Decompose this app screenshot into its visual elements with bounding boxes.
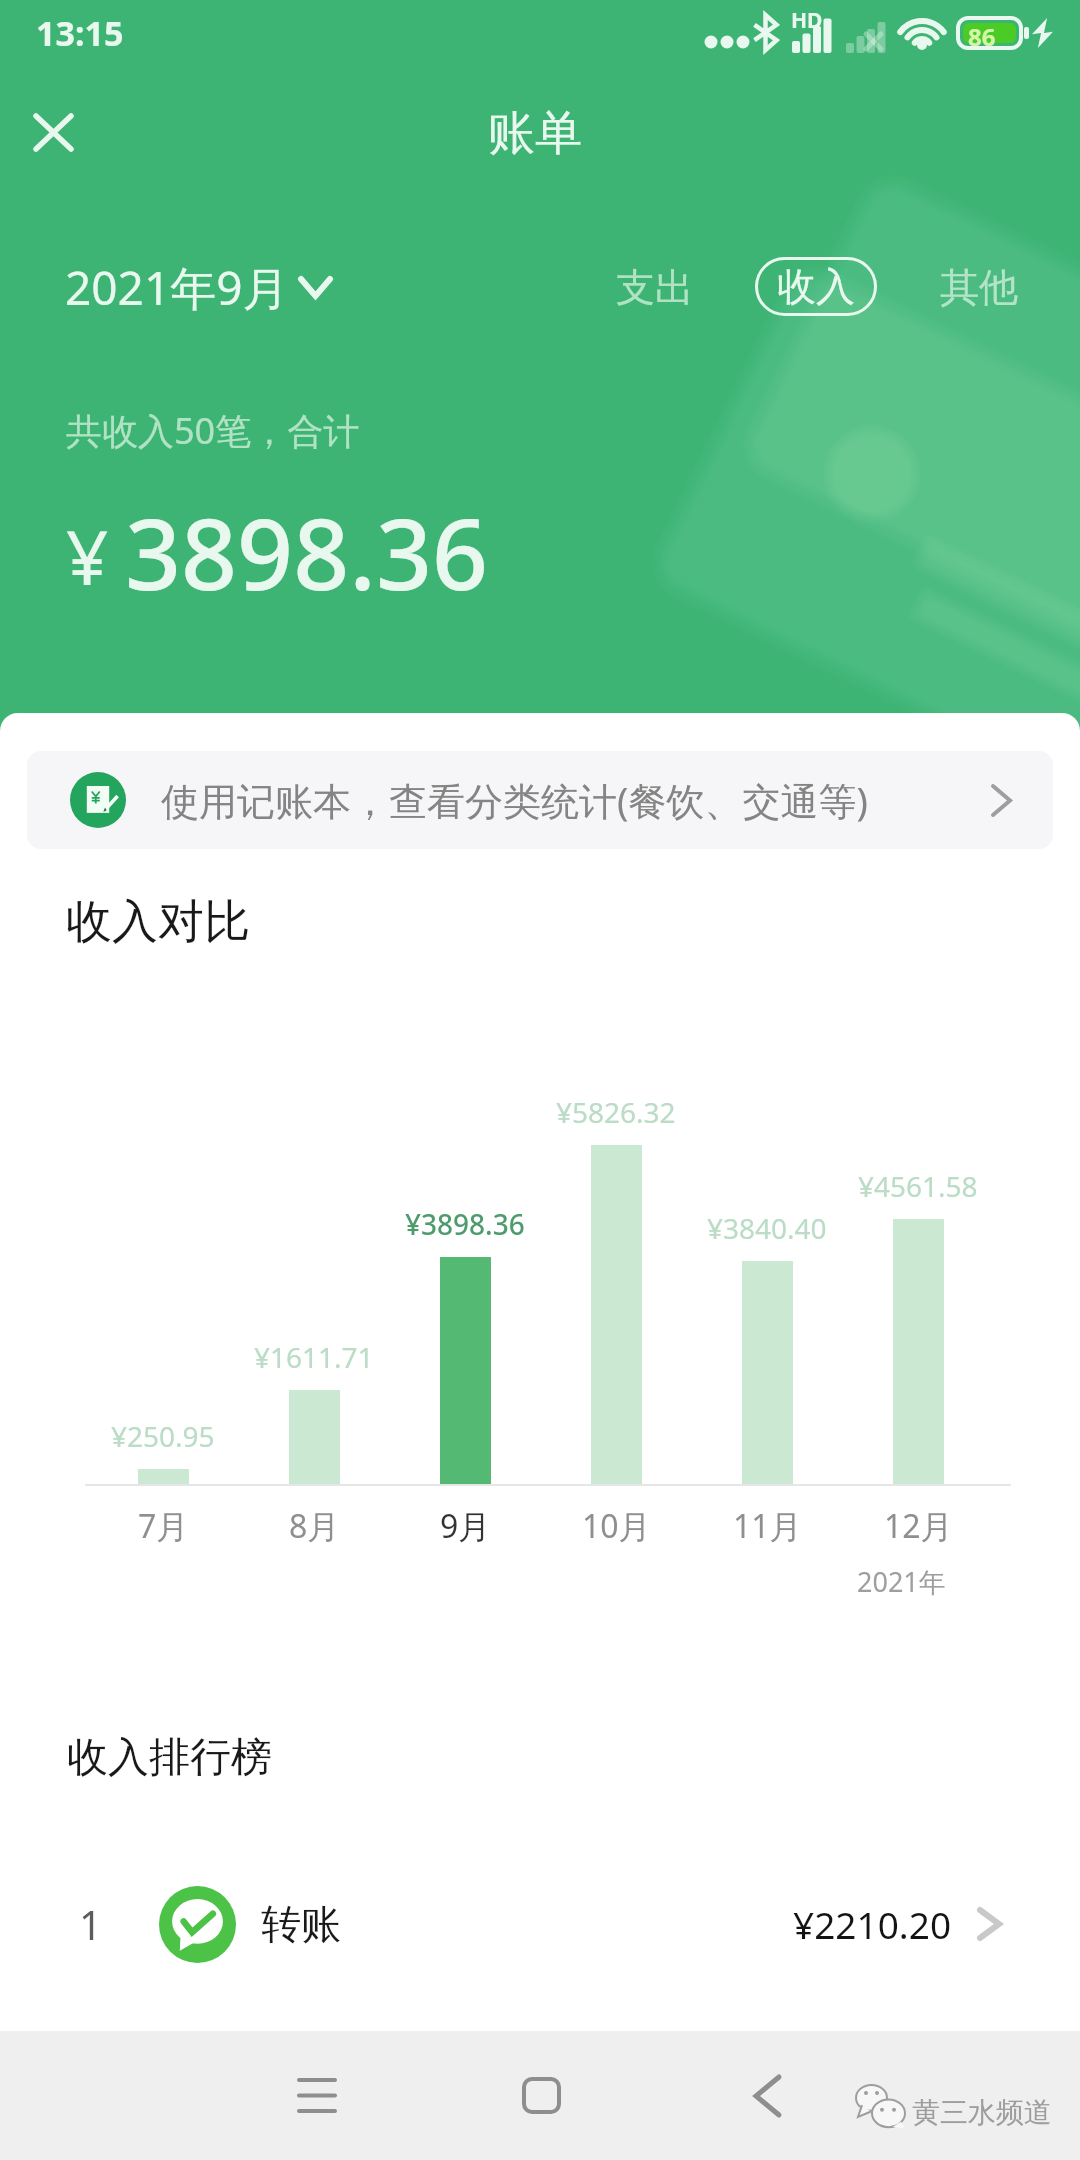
- staticText: 1: [79, 1897, 102, 1951]
- button[interactable]: 其他: [924, 242, 1034, 332]
- staticText: 11月: [733, 1504, 802, 1548]
- staticText: 86: [968, 20, 996, 53]
- button[interactable]: 支出: [600, 242, 710, 332]
- staticText: 13:15: [36, 10, 124, 56]
- button[interactable]: 1: [0, 1856, 1080, 1992]
- button[interactable]: Back: [712, 2031, 822, 2160]
- button[interactable]: 收入: [755, 257, 877, 316]
- staticText: ¥: [66, 506, 109, 607]
- staticText: 账单: [488, 104, 582, 163]
- staticText: 支出: [616, 263, 694, 312]
- button[interactable]: 2021年9月: [65, 256, 330, 319]
- staticText: 12月: [884, 1504, 953, 1548]
- staticText: ¥2210.20: [793, 1899, 952, 1949]
- staticText: 10月: [582, 1504, 651, 1548]
- staticText: ¥1611.71: [254, 1338, 374, 1376]
- staticText: ¥4561.58: [858, 1167, 978, 1205]
- staticText: 2021年9月: [65, 256, 289, 319]
- staticText: 收入: [777, 262, 855, 311]
- staticText: 转账: [261, 1899, 341, 1949]
- button[interactable]: Home: [486, 2031, 596, 2160]
- staticText: 3898.36: [125, 485, 488, 618]
- staticText: 收入排行榜: [67, 1732, 272, 1784]
- staticText: ¥3840.40: [707, 1209, 827, 1247]
- staticText: 其他: [940, 263, 1018, 312]
- staticText: 8月: [289, 1504, 340, 1548]
- staticText: 使用记账本，查看分类统计(餐饮、交通等): [161, 774, 868, 826]
- staticText: 2021年: [857, 1563, 946, 1600]
- button[interactable]: Recent apps: [262, 2031, 372, 2160]
- button[interactable]: 使用记账本，查看分类统计(餐饮、交通等): [27, 751, 1053, 849]
- staticText: HD: [791, 6, 823, 35]
- staticText: 7月: [138, 1504, 189, 1548]
- staticText: 黄三水频道: [912, 2095, 1052, 2130]
- button[interactable]: Close: [13, 92, 93, 172]
- staticText: ¥5826.32: [556, 1093, 676, 1131]
- staticText: 收入对比: [66, 893, 250, 951]
- staticText: 共收入50笔，合计: [66, 406, 360, 455]
- staticText: ¥3898.36: [405, 1205, 525, 1243]
- staticText: 9月: [440, 1504, 491, 1548]
- staticText: ¥250.95: [111, 1417, 215, 1455]
